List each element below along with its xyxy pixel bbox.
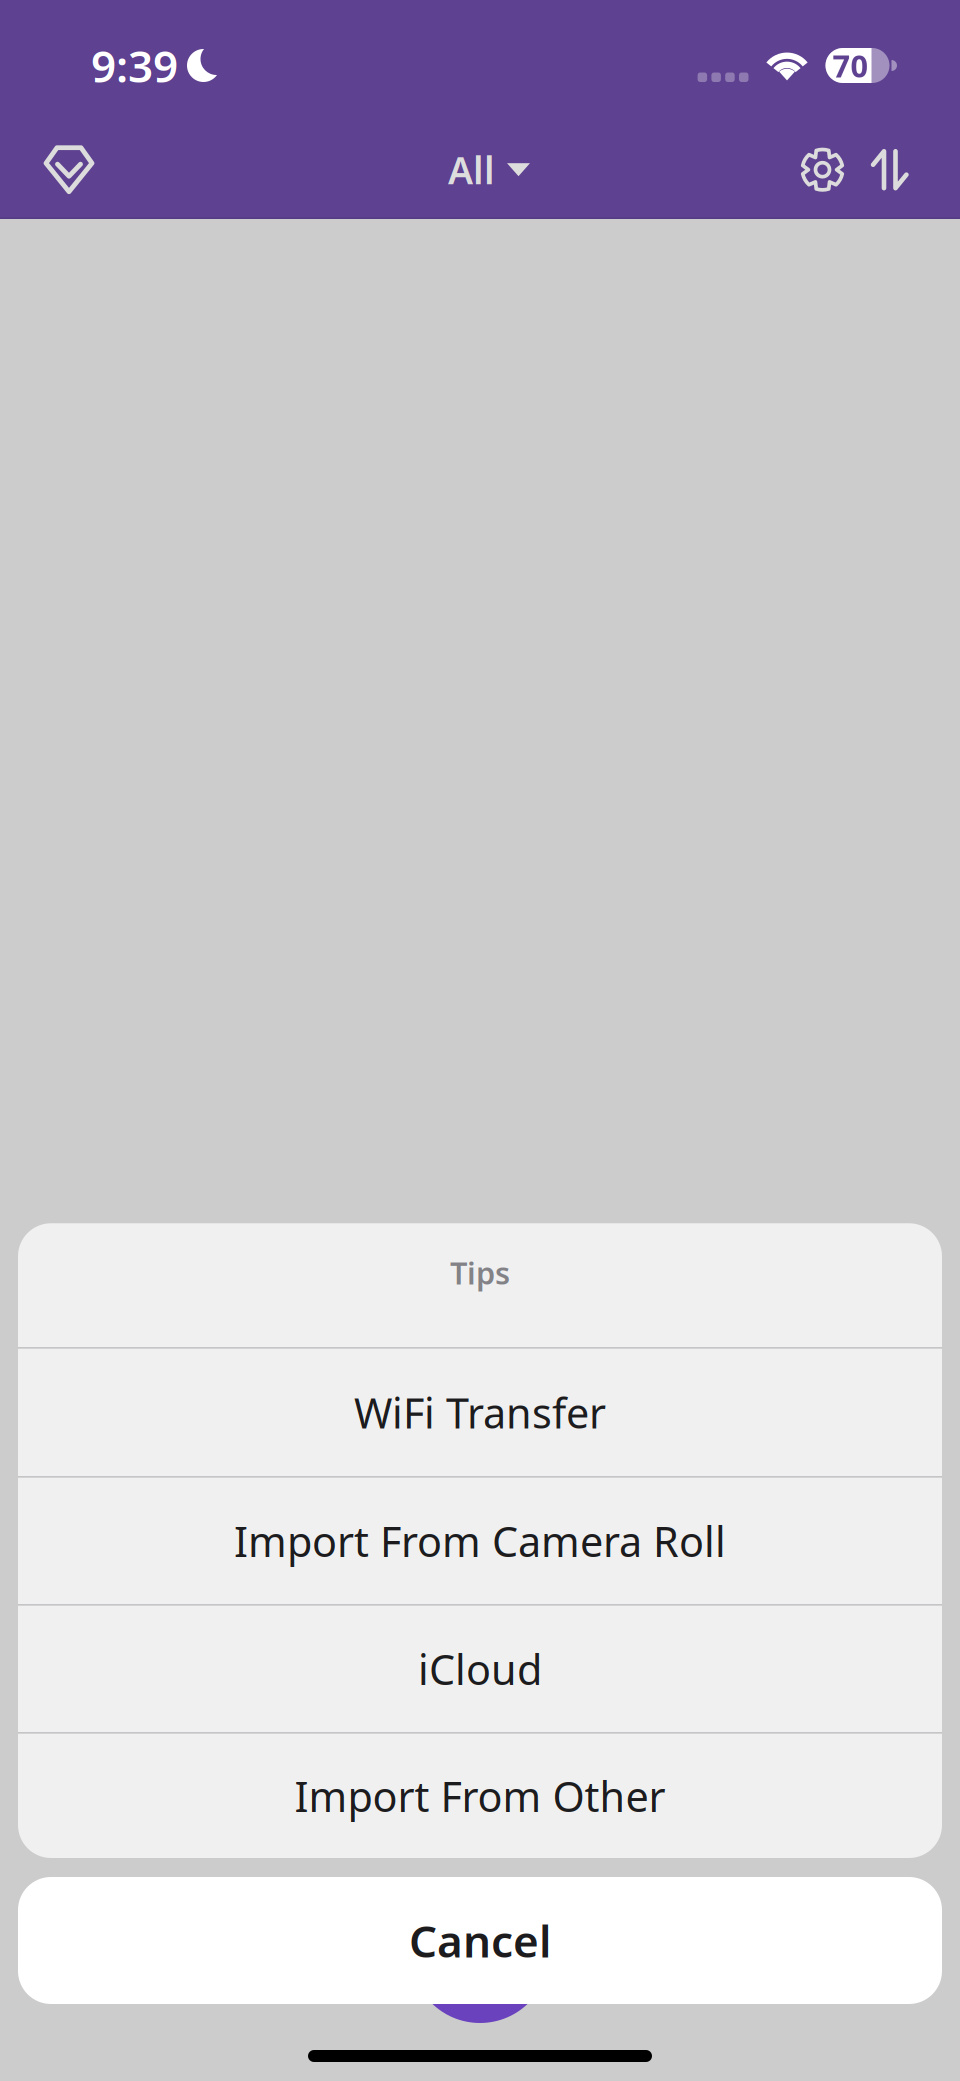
staticText: iCloud xyxy=(418,1641,542,1696)
button[interactable]: Import From Camera Roll xyxy=(18,1478,942,1604)
staticText: Import From Other xyxy=(294,1768,665,1823)
button[interactable]: Import From Other xyxy=(18,1734,942,1858)
button[interactable]: WiFi Transfer xyxy=(18,1349,942,1476)
staticText: All xyxy=(448,145,495,194)
staticText: Import From Camera Roll xyxy=(234,1513,726,1568)
button[interactable]: All xyxy=(448,122,530,218)
staticText: 9:39 xyxy=(91,36,178,95)
button[interactable]: Sort xyxy=(870,122,909,218)
button[interactable]: Library xyxy=(43,122,95,218)
staticText: 70 xyxy=(832,45,868,86)
button[interactable]: iCloud xyxy=(18,1606,942,1732)
staticText: WiFi Transfer xyxy=(354,1385,606,1440)
staticText: Tips xyxy=(450,1252,510,1293)
staticText: Cancel xyxy=(409,1911,551,1970)
button[interactable]: Settings xyxy=(800,124,844,216)
button[interactable]: Cancel xyxy=(18,1877,942,2004)
